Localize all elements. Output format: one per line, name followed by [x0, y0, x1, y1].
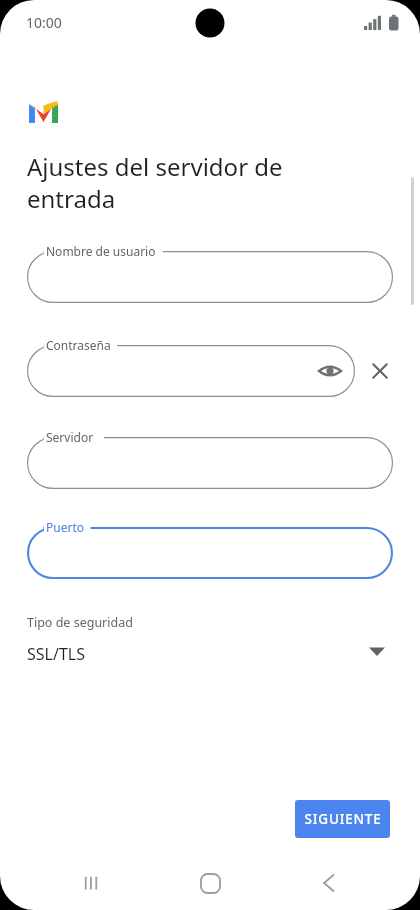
- staticText: 10:00: [26, 13, 62, 32]
- staticText: Tipo de seguridad: [27, 614, 133, 631]
- staticText: Puerto: [46, 519, 84, 535]
- button[interactable]: Mostrar contraseña: [27, 345, 355, 397]
- staticText: Ajustes del servidor de entrada: [27, 150, 327, 215]
- button[interactable]: [27, 527, 393, 579]
- button[interactable]: Borrar: [366, 357, 394, 385]
- staticText: SSL/TLS: [27, 643, 85, 665]
- button[interactable]: Atrás: [301, 856, 357, 910]
- staticText: Contraseña: [46, 337, 111, 353]
- button[interactable]: [27, 437, 393, 489]
- other: Gmail: [29, 101, 58, 123]
- staticText: Nombre de usuario: [46, 243, 156, 259]
- staticText: SIGUIENTE: [304, 810, 382, 828]
- staticText: Servidor: [46, 429, 94, 445]
- button[interactable]: Inicio: [182, 856, 238, 910]
- other: Mostrar contraseña: [318, 359, 342, 383]
- button[interactable]: Recientes: [63, 856, 119, 910]
- button[interactable]: [27, 251, 393, 303]
- button[interactable]: SIGUIENTE: [295, 800, 390, 838]
- button[interactable]: Tipo de seguridad: [0, 608, 420, 676]
